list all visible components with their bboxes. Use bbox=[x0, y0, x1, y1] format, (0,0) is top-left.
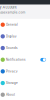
staticText: Display bbox=[6, 35, 17, 38]
staticText: My Account bbox=[0, 5, 16, 9]
staticText: name@example.com bbox=[0, 10, 25, 14]
staticText: About bbox=[6, 93, 15, 96]
button[interactable]: Privacy bbox=[0, 65, 50, 77]
staticText: Notifications bbox=[6, 58, 25, 61]
button[interactable]: Storage bbox=[0, 77, 50, 89]
button[interactable]: General bbox=[0, 19, 50, 31]
button[interactable]: Notifications bbox=[0, 54, 50, 66]
staticText: General bbox=[6, 23, 18, 26]
staticText: Privacy bbox=[6, 70, 18, 73]
staticText: Sounds bbox=[6, 46, 17, 50]
staticText: Storage bbox=[6, 81, 18, 85]
button[interactable]: Display bbox=[0, 30, 50, 42]
button[interactable]: About bbox=[0, 89, 50, 100]
button[interactable]: Sounds bbox=[0, 42, 50, 54]
